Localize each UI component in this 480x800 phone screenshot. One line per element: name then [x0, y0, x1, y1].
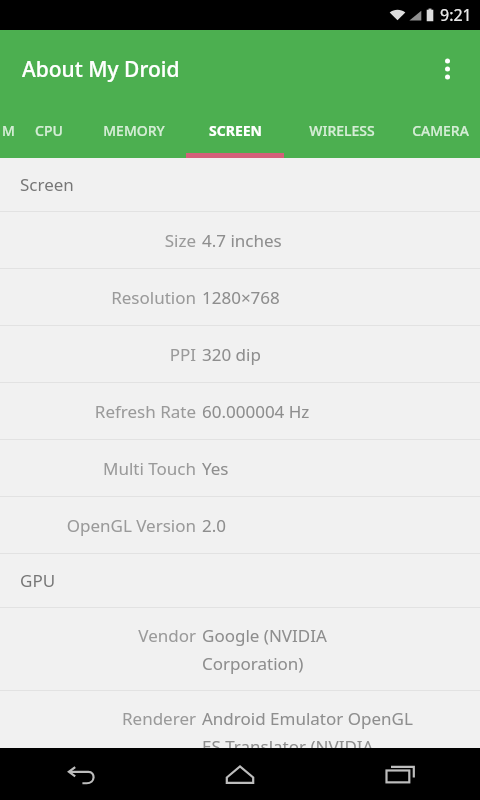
staticText: Google (NVIDIA Corporation)	[202, 624, 327, 675]
staticText: Android Emulator OpenGL ES Translator (N…	[202, 707, 413, 748]
button[interactable]: Resolution	[0, 269, 480, 326]
button[interactable]: Vendor	[0, 608, 480, 691]
button[interactable]: Recent apps	[320, 748, 480, 800]
button[interactable]: Multi Touch	[0, 440, 480, 497]
staticText: WIRELESS	[309, 121, 375, 140]
button[interactable]: M	[0, 108, 16, 158]
staticText: CPU	[35, 121, 63, 140]
button[interactable]: Renderer	[0, 691, 480, 748]
button[interactable]: WIRELESS	[284, 108, 400, 158]
button[interactable]: MEMORY	[82, 108, 186, 158]
staticText: Refresh Rate	[94, 400, 196, 423]
staticText: Vendor	[138, 624, 196, 647]
staticText: CAMERA	[412, 121, 469, 140]
button[interactable]: More options	[430, 52, 464, 86]
staticText: 60.000004 Hz	[202, 400, 310, 423]
staticText: PPI	[169, 343, 196, 366]
staticText: OpenGL Version	[66, 514, 196, 537]
button[interactable]: Refresh Rate	[0, 383, 480, 440]
staticText: GPU	[20, 569, 56, 592]
staticText: 9:21	[440, 4, 472, 26]
button[interactable]: CAMERA	[400, 108, 480, 158]
button[interactable]: SCREEN	[186, 108, 284, 158]
staticText: SCREEN	[209, 121, 262, 140]
staticText: Screen	[20, 173, 74, 196]
staticText: Resolution	[111, 286, 196, 309]
button[interactable]: Home	[160, 748, 320, 800]
staticText: MEMORY	[103, 121, 165, 140]
button[interactable]: PPI	[0, 326, 480, 383]
staticText: M	[2, 121, 15, 140]
button[interactable]: Size	[0, 212, 480, 269]
button[interactable]: Back	[0, 748, 160, 800]
staticText: 320 dip	[202, 343, 261, 366]
staticText: Size	[164, 229, 196, 252]
staticText: Yes	[202, 457, 229, 480]
staticText: Renderer	[121, 707, 196, 730]
staticText: 1280×768	[202, 286, 280, 309]
staticText: 2.0	[202, 514, 227, 537]
staticText: About My Droid	[22, 55, 180, 84]
button[interactable]: CPU	[16, 108, 82, 158]
staticText: 4.7 inches	[202, 229, 282, 252]
button[interactable]: OpenGL Version	[0, 497, 480, 554]
staticText: Multi Touch	[103, 457, 196, 480]
